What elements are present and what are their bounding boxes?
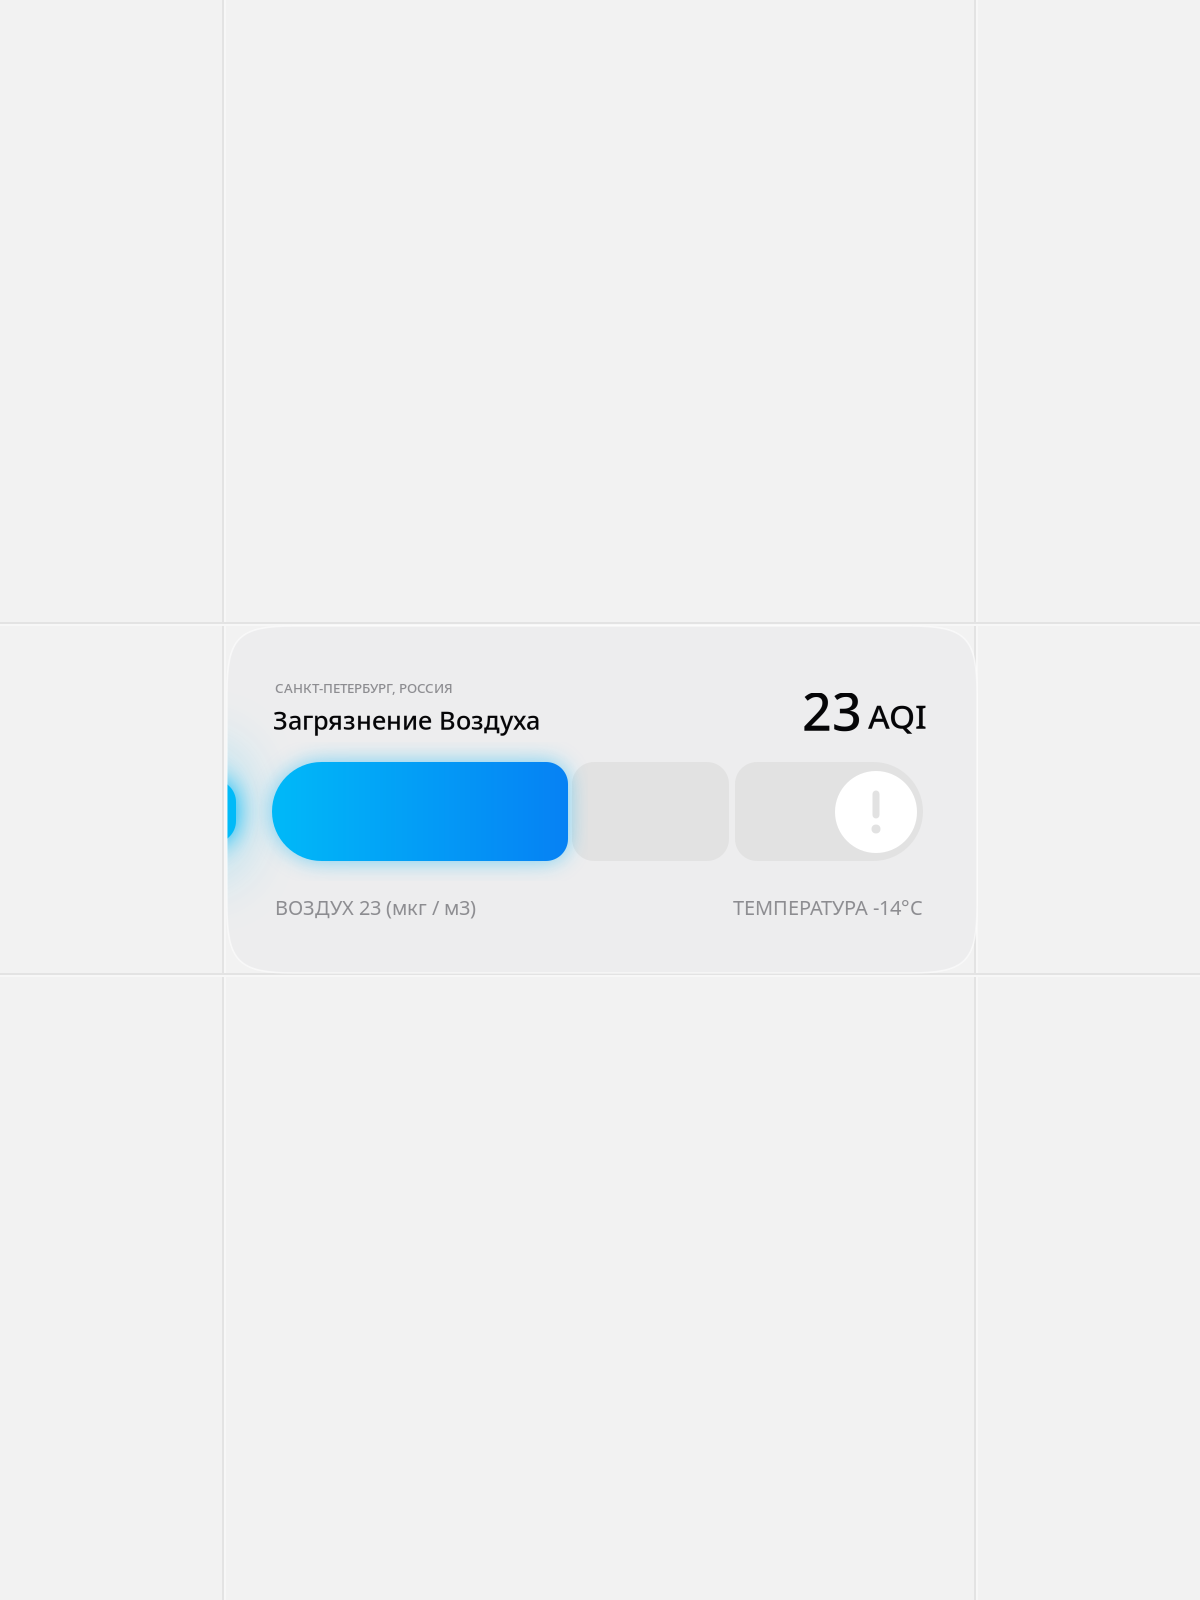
staticText: ТЕМПЕРАТУРА -14°C	[733, 894, 923, 921]
staticText: 23	[802, 676, 862, 745]
button[interactable]: САНКТ-ПЕТЕРБУРГ, РОССИЯ	[227, 626, 977, 973]
staticText: САНКТ-ПЕТЕРБУРГ, РОССИЯ	[275, 679, 453, 697]
staticText: ВОЗДУХ 23 (мкг / м3)	[275, 894, 476, 921]
staticText: Загрязнение Воздуха	[273, 703, 540, 737]
staticText: AQI	[868, 694, 927, 738]
